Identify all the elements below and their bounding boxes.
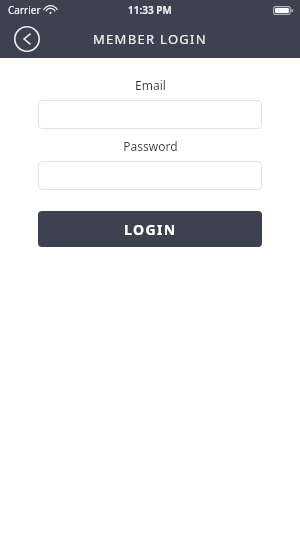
staticText: Password bbox=[123, 138, 178, 154]
button[interactable] bbox=[38, 100, 262, 129]
staticText: MEMBER LOGIN bbox=[93, 30, 208, 48]
staticText: LOGIN bbox=[124, 220, 177, 239]
button[interactable]: Back bbox=[13, 25, 41, 53]
staticText: Email bbox=[135, 77, 166, 93]
staticText: 11:33 PM bbox=[128, 3, 172, 17]
button[interactable]: LOGIN bbox=[38, 211, 262, 247]
staticText: Carrier bbox=[8, 3, 41, 17]
button[interactable] bbox=[38, 161, 262, 190]
